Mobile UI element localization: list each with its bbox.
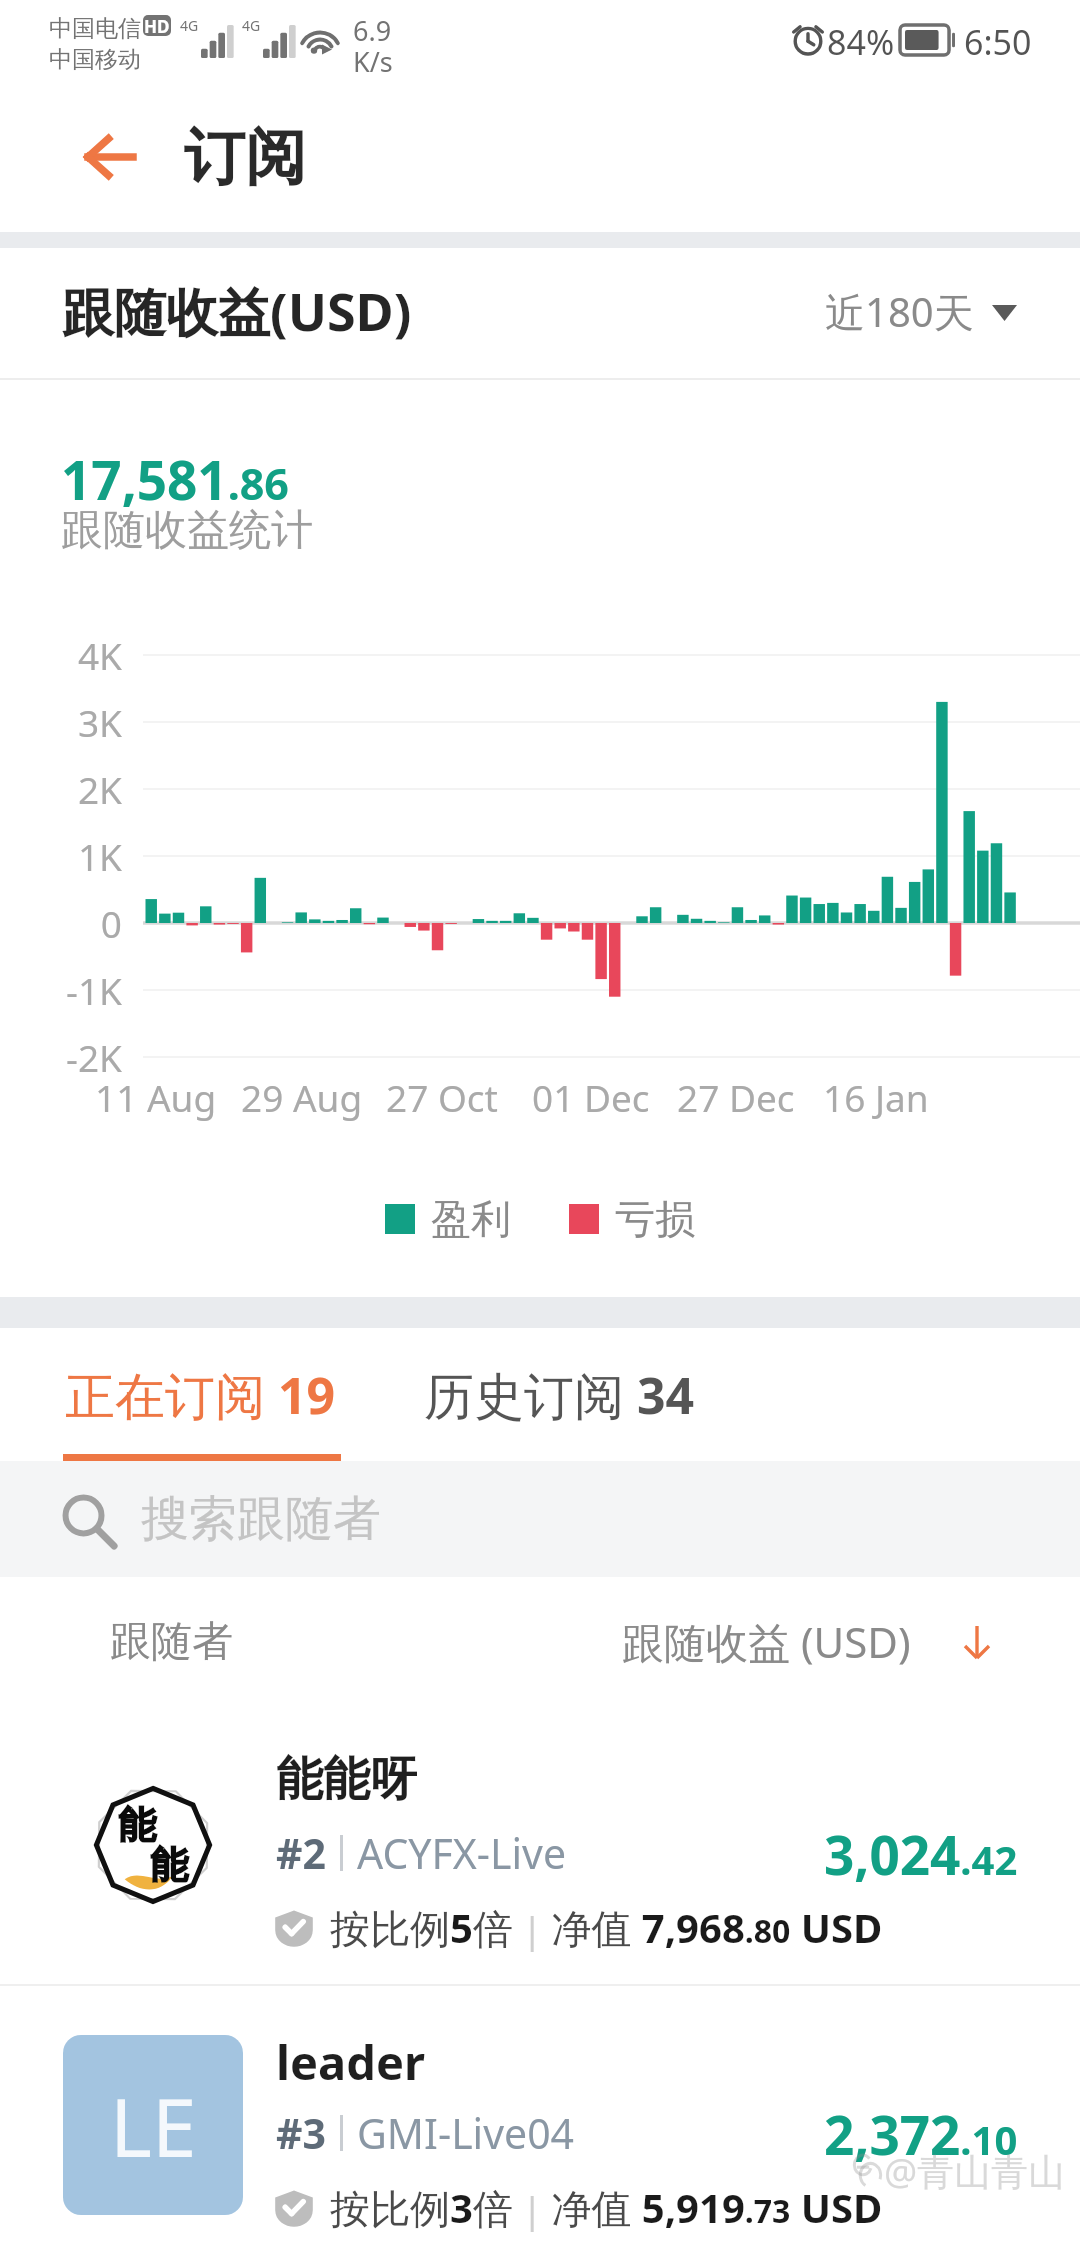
staticText: 2,372.10 xyxy=(824,2098,1018,2170)
staticText: #2 xyxy=(276,1825,326,1881)
staticText: 历史订阅 34 xyxy=(424,1361,695,1429)
staticText: 近180天 xyxy=(825,284,974,339)
staticText: 6.9 xyxy=(353,12,392,49)
staticText: 盈利 xyxy=(431,1194,511,1244)
staticText: 4G xyxy=(180,16,199,35)
staticText: ACYFX-Live xyxy=(357,1825,567,1881)
staticText: 跟随者 xyxy=(110,1616,233,1668)
staticText: 按比例5倍 | 净值 7,968.80 USD xyxy=(330,1900,883,1955)
staticText: 27 Oct xyxy=(386,1072,532,1122)
button[interactable]: 跟随收益 (USD) xyxy=(622,1613,990,1670)
button[interactable]: Back xyxy=(54,102,164,212)
staticText: 中国电信 xyxy=(49,14,141,43)
staticText: @青山青山 xyxy=(884,2145,1066,2196)
button[interactable]: 历史订阅 34 xyxy=(424,1350,695,1418)
staticText: 能 xyxy=(118,1801,156,1849)
staticText: 16 Jan xyxy=(823,1072,969,1122)
staticText: LE xyxy=(110,2071,197,2180)
staticText: 跟随收益 (USD) xyxy=(622,1613,911,1670)
staticText: 跟随收益(USD) xyxy=(62,275,412,346)
staticText: -2K xyxy=(0,1032,122,1082)
staticText: 27 Dec xyxy=(677,1072,823,1122)
button[interactable]: 跟随收益(USD) xyxy=(62,248,1017,378)
staticText: 搜索跟随者 xyxy=(141,1489,381,1549)
staticText: leader xyxy=(276,2030,425,2094)
staticText: 亏损 xyxy=(615,1194,695,1244)
staticText: 17,581.86 xyxy=(61,443,289,515)
staticText: 中国移动 xyxy=(49,45,141,74)
staticText: 跟随收益统计 xyxy=(61,504,313,557)
staticText: 6:50 xyxy=(964,19,1032,65)
button[interactable]: 搜索跟随者 xyxy=(58,1461,1080,1577)
button[interactable]: 能 xyxy=(0,1706,1080,1984)
staticText: K/s xyxy=(353,43,393,80)
staticText: 能 xyxy=(150,1841,188,1889)
staticText: GMI-Live04 xyxy=(357,2105,575,2161)
staticText: 1K xyxy=(0,831,122,881)
staticText: 11 Aug xyxy=(95,1072,241,1122)
staticText: 订阅 xyxy=(184,119,306,196)
staticText: 0 xyxy=(0,898,122,948)
staticText: 29 Aug xyxy=(241,1072,387,1122)
staticText: 2K xyxy=(0,764,122,814)
staticText: HD xyxy=(144,15,170,36)
staticText: -1K xyxy=(0,965,122,1015)
staticText: 正在订阅 19 xyxy=(65,1361,336,1429)
staticText: 3,024.42 xyxy=(824,1818,1018,1890)
staticText: 能能呀 xyxy=(276,1750,417,1809)
staticText: 3K xyxy=(0,697,122,747)
button[interactable]: 正在订阅 19 xyxy=(65,1350,336,1418)
button[interactable]: LE xyxy=(0,1986,1080,2244)
staticText: 4K xyxy=(0,630,122,680)
staticText: 4G xyxy=(242,16,261,35)
staticText: 01 Dec xyxy=(532,1072,678,1122)
staticText: 84% xyxy=(827,19,895,65)
staticText: 按比例3倍 | 净值 5,919.73 USD xyxy=(330,2180,883,2235)
staticText: #3 xyxy=(276,2105,326,2161)
